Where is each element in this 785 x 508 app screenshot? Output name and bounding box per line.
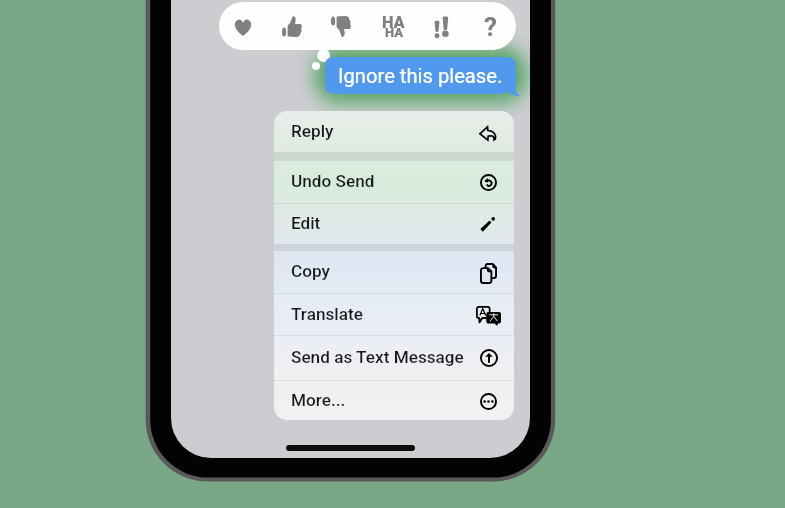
staticText: ? xyxy=(484,12,497,42)
staticText: Ignore this please. xyxy=(338,64,503,88)
staticText: Translate xyxy=(291,304,363,324)
button[interactable]: More... xyxy=(274,381,514,420)
staticText: More... xyxy=(291,390,346,410)
button[interactable]: Edit xyxy=(274,204,514,244)
button[interactable]: Copy xyxy=(274,251,514,293)
staticText: Send as Text Message xyxy=(291,347,464,367)
staticText: Edit xyxy=(291,213,321,233)
button[interactable]: Undo Send xyxy=(274,161,514,203)
button[interactable]: Translate xyxy=(274,294,514,335)
staticText: HA xyxy=(382,13,405,32)
staticText: Undo Send xyxy=(291,171,375,191)
button[interactable]: Thumbs up xyxy=(269,2,315,50)
button[interactable]: Reply xyxy=(274,111,514,152)
staticText: Copy xyxy=(291,261,330,281)
button[interactable]: Exclamation xyxy=(418,2,464,50)
button[interactable]: Question xyxy=(467,2,513,50)
button[interactable]: Love xyxy=(220,2,266,50)
staticText: HA xyxy=(385,25,404,40)
button[interactable]: Haha xyxy=(371,2,417,50)
button[interactable]: Send as Text Message xyxy=(274,336,514,380)
staticText: Reply xyxy=(291,121,334,141)
button[interactable]: Thumbs down xyxy=(318,2,364,50)
